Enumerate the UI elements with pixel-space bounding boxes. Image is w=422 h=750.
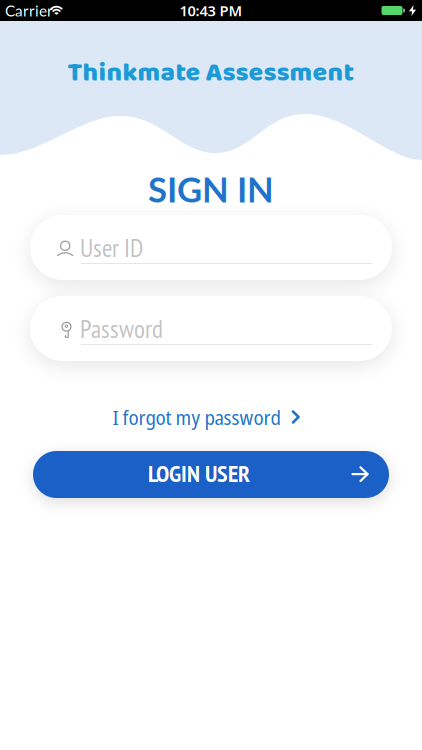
button[interactable]: User ID	[30, 215, 392, 280]
staticText: I forgot my password	[112, 403, 280, 431]
staticText: SIGN IN	[148, 168, 274, 210]
staticText: Carrier	[5, 1, 53, 20]
button[interactable]: Password	[30, 296, 392, 361]
staticText: Password	[80, 312, 163, 345]
button[interactable]: LOGIN USER	[33, 451, 389, 498]
staticText: LOGIN USER	[148, 458, 250, 489]
staticText: 10:43 PM	[179, 1, 242, 20]
staticText: Thinkmate Assessment	[67, 52, 354, 94]
button[interactable]: I forgot my password	[112, 403, 299, 431]
staticText: User ID	[80, 231, 143, 264]
